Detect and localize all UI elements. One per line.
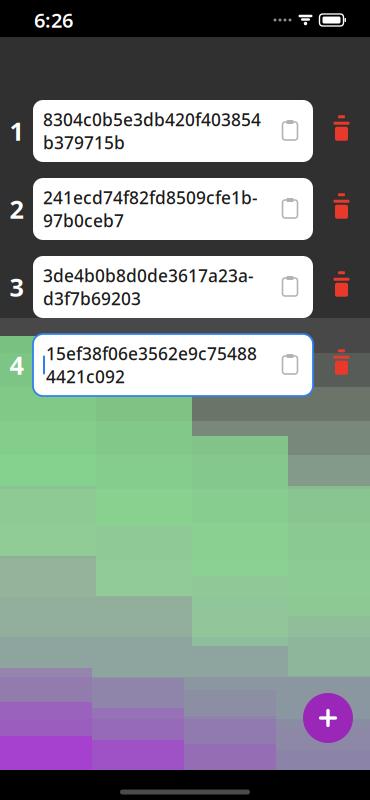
- button[interactable]: Delete secret 1: [313, 100, 370, 162]
- button[interactable]: 241ecd74f82fd8509cfe1b97b0ceb7: [33, 178, 313, 240]
- button[interactable]: Delete secret 3: [313, 256, 370, 318]
- button[interactable]: Delete secret 4: [313, 334, 370, 396]
- staticText: 1: [9, 114, 23, 148]
- staticText: 241ecd74f82fd8509cfe1b97b0ceb7: [43, 186, 258, 232]
- button[interactable]: 15ef38f06e3562e9c754884421c092: [33, 334, 313, 396]
- button[interactable]: Delete secret 2: [313, 178, 370, 240]
- staticText: 2: [9, 192, 23, 226]
- button[interactable]: 3de4b0b8d0de3617a23ad3f7b69203: [33, 256, 313, 318]
- staticText: 8304c0b5e3db420f403854b379715b: [43, 108, 261, 154]
- staticText: 4: [9, 348, 23, 382]
- staticText: 3de4b0b8d0de3617a23ad3f7b69203: [43, 264, 254, 310]
- staticText: 15ef38f06e3562e9c754884421c092: [46, 342, 257, 388]
- staticText: 3: [9, 270, 23, 304]
- button[interactable]: 8304c0b5e3db420f403854b379715b: [33, 100, 313, 162]
- button[interactable]: Add secret: [302, 692, 354, 744]
- staticText: 6:26: [34, 7, 73, 33]
